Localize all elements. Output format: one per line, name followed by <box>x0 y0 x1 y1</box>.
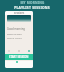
staticText: PLAYLIST SESSIONS <box>14 5 50 10</box>
staticText: gentle sound <box>7 36 22 39</box>
staticText: Good morning <box>7 27 25 31</box>
staticText: MY MORNING <box>20 1 45 5</box>
button[interactable]: START SESSION <box>5 54 33 60</box>
staticText: sessions <box>14 11 25 15</box>
staticText: wake up with <box>7 32 22 35</box>
staticText: START SESSION <box>9 55 29 59</box>
